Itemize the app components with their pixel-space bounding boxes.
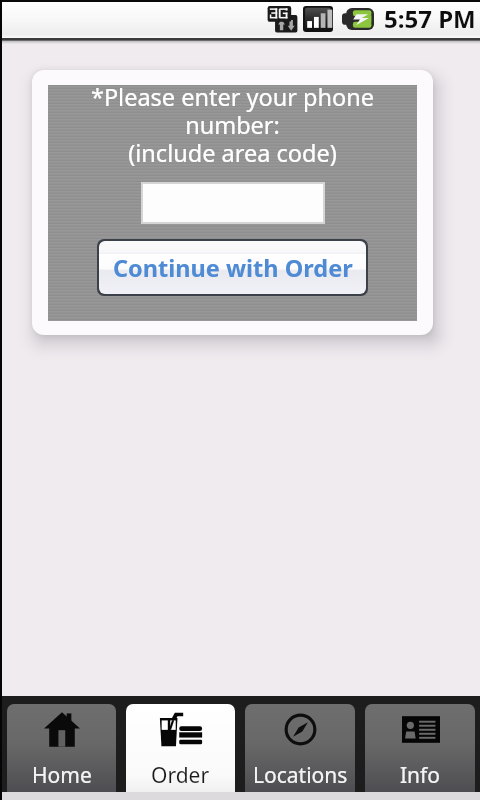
button[interactable]: Order <box>126 704 235 792</box>
staticText: Home <box>32 761 92 790</box>
staticText: Locations <box>253 761 348 790</box>
staticText: 5:57 PM <box>384 2 476 35</box>
button[interactable]: Continue with Order <box>99 241 366 294</box>
staticText: Order <box>151 761 210 790</box>
button[interactable]: Locations <box>245 704 355 792</box>
staticText: Info <box>400 761 441 790</box>
staticText: *Please enter your phone number: (includ… <box>48 81 417 169</box>
button[interactable]: Home <box>7 704 116 792</box>
button[interactable]: Info <box>365 704 475 792</box>
staticText: Continue with Order <box>113 252 353 284</box>
